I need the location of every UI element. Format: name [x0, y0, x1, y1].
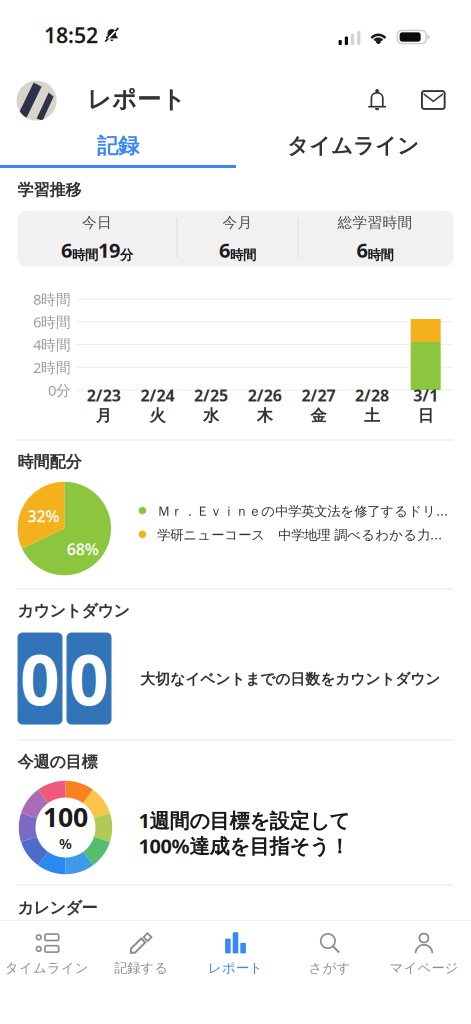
staticText: 2/23 [87, 384, 121, 406]
button[interactable]: マイページ [377, 927, 471, 981]
staticText: 2時間 [33, 357, 71, 377]
staticText: 100%達成を目指そう！ [139, 832, 350, 859]
staticText: % [59, 833, 72, 853]
staticText: 大切なイベントまでの日数をカウントダウン [140, 670, 440, 688]
staticText: 0 [69, 632, 109, 725]
staticText: 18:52 [44, 21, 98, 49]
staticText: 記録 [97, 133, 139, 159]
staticText: 0 [20, 632, 60, 725]
staticText: 今月 [222, 214, 252, 232]
staticText: 2/26 [248, 384, 282, 406]
button[interactable]: Profile [17, 81, 57, 121]
staticText: 今日 [82, 214, 112, 232]
button[interactable]: 記録する [94, 927, 188, 981]
staticText: 68% [67, 538, 99, 560]
button[interactable]: Notifications [360, 83, 394, 117]
staticText: 2/27 [301, 384, 335, 406]
staticText: レポート [87, 85, 186, 114]
staticText: 6時間 [33, 312, 71, 331]
staticText: 記録する [114, 960, 168, 976]
button[interactable]: さがす [283, 927, 377, 981]
button[interactable]: タイムライン [235, 125, 470, 167]
staticText: 2/25 [194, 384, 228, 406]
staticText: 3/1 [413, 384, 438, 406]
staticText: 6 [61, 237, 72, 263]
staticText: 学習推移 [17, 180, 81, 200]
staticText: 木 [257, 406, 273, 425]
staticText: 金 [310, 406, 326, 425]
staticText: 6 [219, 237, 230, 263]
staticText: 水 [203, 406, 219, 425]
staticText: 32% [28, 505, 60, 527]
staticText: 1週間の目標を設定して [139, 807, 350, 833]
staticText: 100 [43, 799, 88, 834]
staticText: 時間 [230, 247, 256, 263]
staticText: 2/28 [355, 384, 389, 406]
staticText: 0分 [48, 380, 71, 400]
button[interactable]: タイムライン [0, 927, 94, 981]
staticText: 日 [418, 406, 434, 425]
staticText: 時間 [72, 247, 98, 263]
staticText: 2/24 [140, 384, 174, 406]
staticText: 総学習時間 [337, 214, 412, 232]
staticText: 火 [149, 406, 165, 425]
staticText: 土 [364, 406, 380, 425]
staticText: Ｍｒ．Ｅｖｉｎｅの中学英文法を修了するドリル５… [157, 502, 453, 519]
staticText: 時間 [367, 247, 393, 263]
staticText: マイページ [389, 960, 458, 976]
button[interactable]: Messages [416, 85, 450, 115]
staticText: 19 [98, 237, 120, 263]
staticText: 学研ニューコース 中学地理 調べるわかる力がつく… [157, 525, 453, 543]
button[interactable]: 記録 [0, 125, 235, 167]
staticText: さがす [309, 960, 351, 976]
staticText: 8時間 [33, 289, 71, 309]
staticText: 月 [96, 406, 112, 425]
button[interactable]: レポート [188, 927, 283, 981]
staticText: タイムライン [287, 133, 419, 159]
staticText: カレンダー [17, 898, 97, 918]
staticText: 時間配分 [17, 452, 81, 472]
staticText: レポート [208, 960, 263, 976]
staticText: カウントダウン [17, 601, 129, 621]
staticText: 6 [356, 237, 367, 263]
staticText: タイムライン [5, 960, 89, 976]
staticText: 4時間 [33, 335, 71, 354]
staticText: 今週の目標 [17, 752, 97, 772]
staticText: 分 [120, 247, 133, 263]
